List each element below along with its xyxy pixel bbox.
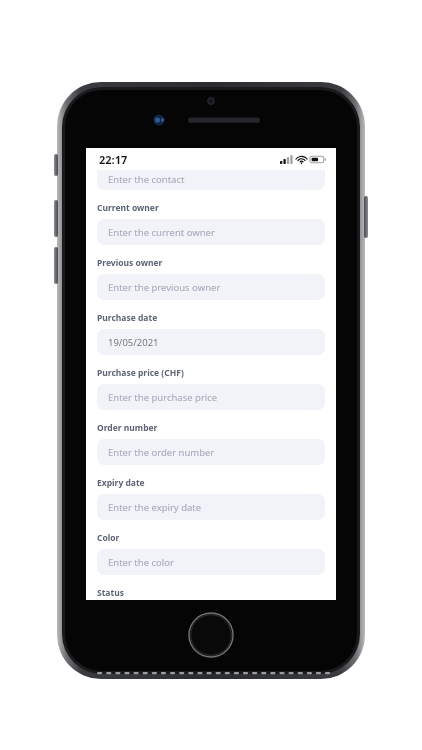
staticText: Purchase date bbox=[97, 312, 158, 324]
staticText: Enter the current owner bbox=[108, 226, 215, 239]
button[interactable]: Enter the current owner bbox=[97, 219, 325, 245]
staticText: Enter the purchase price bbox=[108, 391, 218, 404]
button[interactable]: Enter the expiry date bbox=[97, 494, 325, 520]
staticText: Previous owner bbox=[97, 257, 163, 269]
button[interactable]: Enter the order number bbox=[97, 439, 325, 465]
button[interactable]: 19/05/2021 bbox=[97, 329, 325, 355]
staticText: 19/05/2021 bbox=[108, 336, 159, 349]
staticText: Enter the order number bbox=[108, 446, 215, 459]
other: Mute switch bbox=[54, 154, 58, 176]
staticText: Enter the color bbox=[108, 556, 174, 569]
button[interactable]: Enter the color bbox=[97, 549, 325, 575]
button[interactable]: Enter the previous owner bbox=[97, 274, 325, 300]
staticText: Enter the contact bbox=[108, 173, 185, 186]
staticText: Current owner bbox=[97, 202, 159, 214]
staticText: Enter the previous owner bbox=[108, 281, 221, 294]
button[interactable]: Enter the purchase price bbox=[97, 384, 325, 410]
staticText: Color bbox=[97, 532, 120, 544]
button[interactable]: Enter the contact bbox=[97, 170, 325, 190]
staticText: Purchase price (CHF) bbox=[97, 367, 184, 379]
other: Volume up bbox=[54, 200, 58, 237]
other: Volume down bbox=[54, 247, 58, 284]
staticText: Order number bbox=[97, 422, 158, 434]
other: Home bbox=[57, 600, 365, 672]
staticText: Enter the expiry date bbox=[108, 501, 202, 514]
staticText: Status bbox=[97, 587, 124, 599]
staticText: 22:17 bbox=[99, 152, 128, 167]
staticText: Expiry date bbox=[97, 477, 145, 489]
other: Power bbox=[364, 196, 368, 238]
